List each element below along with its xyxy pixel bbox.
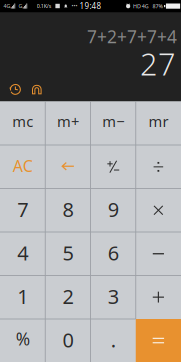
button[interactable] [136, 145, 181, 188]
staticText: AC [13, 155, 33, 176]
staticText: 87% [152, 3, 162, 10]
staticText: mr [148, 111, 168, 131]
button[interactable] [45, 145, 90, 188]
staticText: % [16, 327, 30, 350]
button[interactable]: mc [0, 101, 45, 145]
button[interactable]: 9 [90, 188, 136, 232]
button[interactable]: m− [90, 101, 136, 145]
staticText: 7+2+7+7+4 [87, 25, 177, 48]
button[interactable]: m+ [45, 101, 90, 145]
button[interactable]: Unit converter [31, 83, 43, 95]
staticText: 19:48 [79, 1, 101, 11]
staticText: 5 [62, 239, 73, 266]
staticText: 4G [142, 3, 149, 10]
button[interactable] [90, 145, 136, 188]
button[interactable]: 0 [45, 319, 90, 362]
staticText: 9 [108, 196, 119, 223]
button[interactable]: 1 [0, 275, 45, 319]
button[interactable] [136, 232, 181, 275]
staticText: m+ [57, 111, 79, 131]
staticText: 27 [140, 43, 176, 84]
staticText: 0 [62, 326, 73, 353]
staticText: 6 [108, 239, 119, 266]
staticText: HD [133, 3, 141, 10]
button[interactable] [136, 275, 181, 319]
button[interactable]: mr [136, 101, 181, 145]
button[interactable]: 3 [90, 275, 136, 319]
staticText: ••• [71, 2, 77, 10]
button[interactable]: History [9, 83, 21, 95]
button[interactable] [136, 319, 181, 362]
staticText: 7 [17, 196, 28, 223]
button[interactable]: . [90, 319, 136, 362]
button[interactable]: AC [0, 145, 45, 188]
staticText: 4G [3, 2, 10, 10]
button[interactable]: 2 [45, 275, 90, 319]
button[interactable] [136, 188, 181, 232]
staticText: m− [102, 111, 124, 131]
button[interactable]: 4 [0, 232, 45, 275]
staticText: 2 [62, 283, 73, 310]
button[interactable]: 6 [90, 232, 136, 275]
button[interactable]: % [0, 319, 45, 362]
button[interactable]: 8 [45, 188, 90, 232]
staticText: 1 [17, 283, 28, 310]
staticText: G [18, 2, 22, 10]
button[interactable]: 5 [45, 232, 90, 275]
staticText: . [111, 326, 116, 353]
staticText: 3 [108, 283, 119, 310]
staticText: 0.1K/s [37, 2, 52, 10]
button[interactable]: 7 [0, 188, 45, 232]
staticText: 4 [17, 239, 28, 266]
staticText: mc [12, 111, 33, 131]
staticText: 8 [62, 196, 73, 223]
